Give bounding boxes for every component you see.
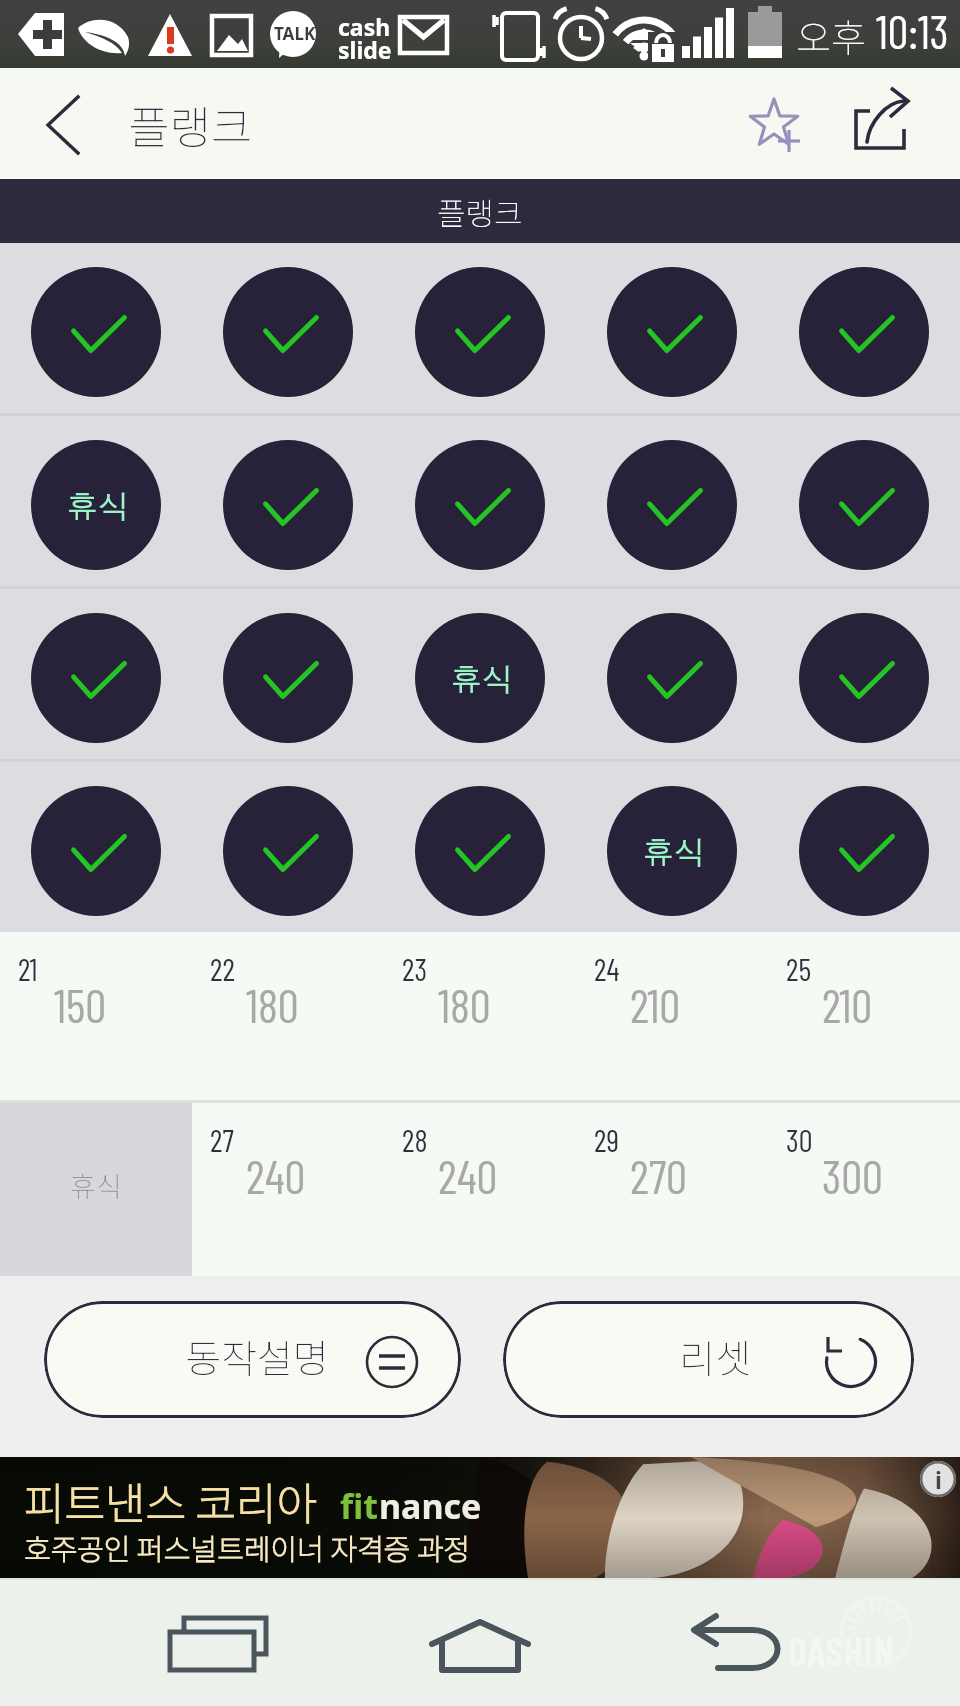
- button[interactable]: [192, 243, 384, 413]
- button[interactable]: 25: [768, 932, 960, 1100]
- button[interactable]: [576, 243, 768, 413]
- staticText: 210: [822, 976, 873, 1032]
- button[interactable]: [768, 243, 960, 413]
- staticText: i: [935, 1464, 942, 1495]
- button[interactable]: 23: [384, 932, 576, 1100]
- button[interactable]: 동작설명: [44, 1301, 461, 1418]
- button[interactable]: 휴식: [576, 762, 768, 932]
- button[interactable]: Back: [640, 1578, 840, 1706]
- staticText: 28: [402, 1121, 428, 1158]
- staticText: 29: [594, 1121, 619, 1158]
- button[interactable]: [384, 762, 576, 932]
- staticText: fit: [340, 1483, 379, 1529]
- button[interactable]: [768, 416, 960, 586]
- staticText: 22: [210, 950, 235, 987]
- staticText: 300: [822, 1147, 883, 1203]
- button[interactable]: 피트낸스 코리아: [0, 1457, 960, 1578]
- staticText: 동작설명: [185, 1328, 329, 1384]
- staticText: 24: [594, 950, 620, 987]
- staticText: 180: [438, 976, 491, 1032]
- staticText: 23: [402, 950, 428, 987]
- button[interactable]: Add to favorites: [726, 68, 824, 179]
- staticText: 150: [54, 976, 107, 1032]
- staticText: nance: [379, 1483, 482, 1529]
- staticText: 10:13: [876, 3, 949, 58]
- staticText: 휴식: [70, 1165, 122, 1206]
- staticText: 180: [246, 976, 299, 1032]
- staticText: 피트낸스 코리아: [24, 1469, 318, 1533]
- staticText: 21: [18, 950, 38, 987]
- button[interactable]: [384, 416, 576, 586]
- staticText: DASHIN: [788, 1626, 896, 1674]
- button[interactable]: 30: [768, 1103, 960, 1276]
- button[interactable]: 22: [192, 932, 384, 1100]
- button[interactable]: [192, 589, 384, 759]
- button[interactable]: 29: [576, 1103, 768, 1276]
- button[interactable]: 휴식: [0, 416, 192, 586]
- button[interactable]: Recent apps: [120, 1578, 320, 1706]
- staticText: 휴식: [643, 832, 705, 871]
- staticText: 플랭크: [128, 92, 253, 157]
- button[interactable]: [0, 762, 192, 932]
- staticText: 오후: [796, 8, 866, 63]
- button[interactable]: 21: [0, 932, 192, 1100]
- staticText: 25: [786, 950, 812, 987]
- button[interactable]: [576, 416, 768, 586]
- staticText: 240: [438, 1147, 498, 1203]
- staticText: 플랭크: [437, 189, 523, 234]
- button[interactable]: 휴식: [0, 1103, 192, 1276]
- button[interactable]: 24: [576, 932, 768, 1100]
- button[interactable]: 28: [384, 1103, 576, 1276]
- button[interactable]: [0, 243, 192, 413]
- staticText: 휴식: [451, 659, 513, 698]
- staticText: 27: [210, 1121, 234, 1158]
- button[interactable]: 휴식: [384, 589, 576, 759]
- button[interactable]: Share: [831, 68, 929, 179]
- staticText: 210: [630, 976, 681, 1032]
- staticText: 270: [630, 1147, 687, 1203]
- button[interactable]: Back: [0, 68, 120, 179]
- staticText: TALK: [274, 22, 316, 45]
- button[interactable]: Home: [380, 1578, 580, 1706]
- button[interactable]: 리셋: [503, 1301, 914, 1418]
- staticText: 호주공인 퍼스널트레이너 자격증 과정: [24, 1526, 471, 1568]
- staticText: 240: [246, 1147, 306, 1203]
- staticText: 리셋: [679, 1328, 751, 1384]
- button[interactable]: [192, 762, 384, 932]
- button[interactable]: [768, 762, 960, 932]
- staticText: 휴식: [67, 486, 129, 525]
- button[interactable]: [576, 589, 768, 759]
- staticText: 30: [786, 1121, 813, 1158]
- button[interactable]: [384, 243, 576, 413]
- button[interactable]: Ad info: [920, 1461, 956, 1497]
- button[interactable]: 27: [192, 1103, 384, 1276]
- button[interactable]: [192, 416, 384, 586]
- button[interactable]: [0, 589, 192, 759]
- button[interactable]: [768, 589, 960, 759]
- staticText: cash slide: [338, 11, 392, 66]
